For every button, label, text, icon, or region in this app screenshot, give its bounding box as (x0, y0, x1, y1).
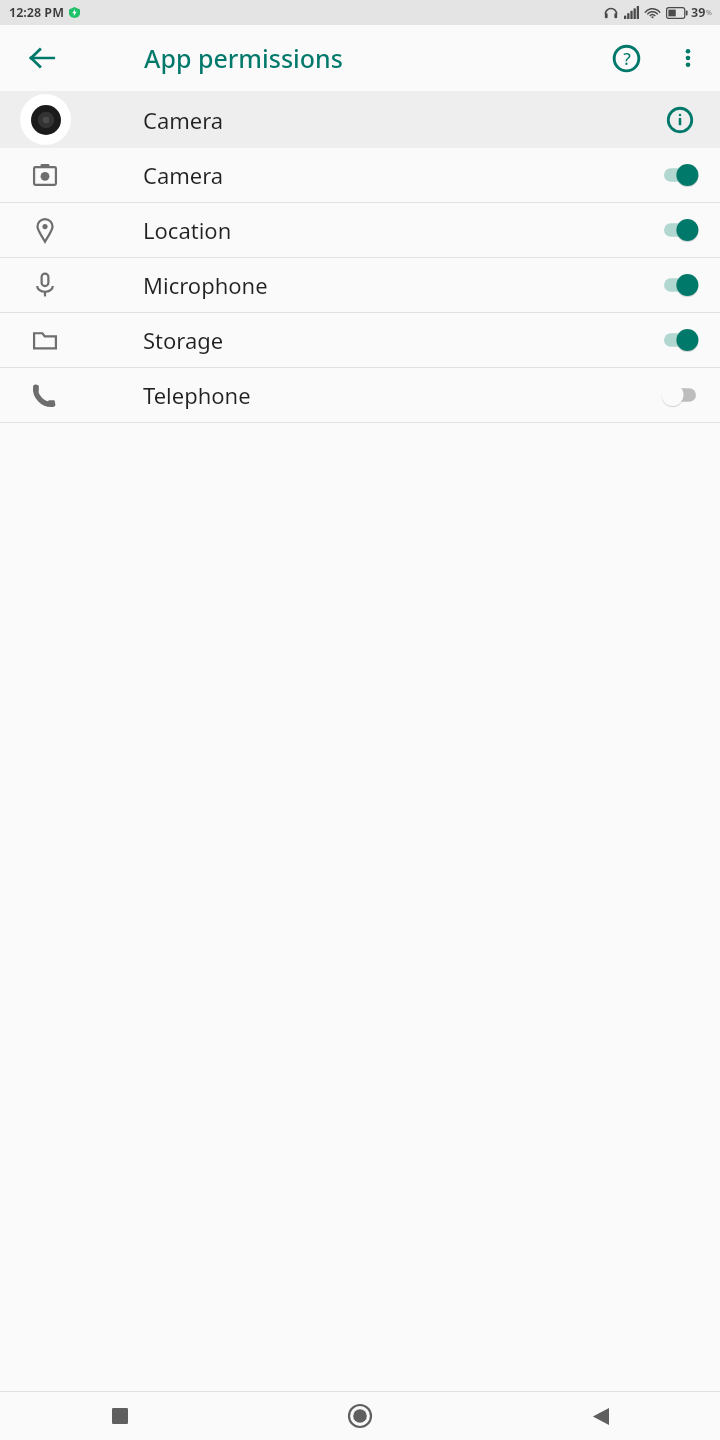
button[interactable]: Telephone permission toggle (658, 375, 702, 415)
staticText: Camera (143, 160, 224, 190)
button[interactable]: More options (666, 36, 710, 80)
button[interactable]: Location permission toggle (658, 210, 702, 250)
button[interactable]: Recent apps (0, 1392, 240, 1440)
button[interactable]: Help (602, 34, 650, 82)
staticText: Location (143, 215, 232, 245)
staticText: 12:28 PM (9, 4, 64, 21)
button[interactable]: Telephone (0, 368, 720, 422)
button[interactable]: Camera (0, 91, 720, 148)
button[interactable]: Microphone permission toggle (658, 265, 702, 305)
button[interactable]: Back (480, 1392, 720, 1440)
staticText: App permissions (144, 41, 343, 75)
button[interactable]: Location (0, 203, 720, 257)
button[interactable]: Back (18, 34, 66, 82)
button[interactable]: Microphone (0, 258, 720, 312)
staticText: Camera (143, 105, 224, 135)
button[interactable]: App info (656, 96, 704, 144)
button[interactable]: Storage (0, 313, 720, 367)
button[interactable]: Camera permission toggle (658, 155, 702, 195)
staticText: ? (623, 47, 631, 70)
button[interactable]: Storage permission toggle (658, 320, 702, 360)
staticText: Telephone (143, 380, 251, 410)
button[interactable]: Home (240, 1392, 480, 1440)
button[interactable]: Camera (0, 148, 720, 202)
staticText: Microphone (143, 270, 268, 300)
staticText: 39 (691, 4, 706, 21)
staticText: % (706, 8, 712, 18)
staticText: Storage (143, 325, 224, 355)
